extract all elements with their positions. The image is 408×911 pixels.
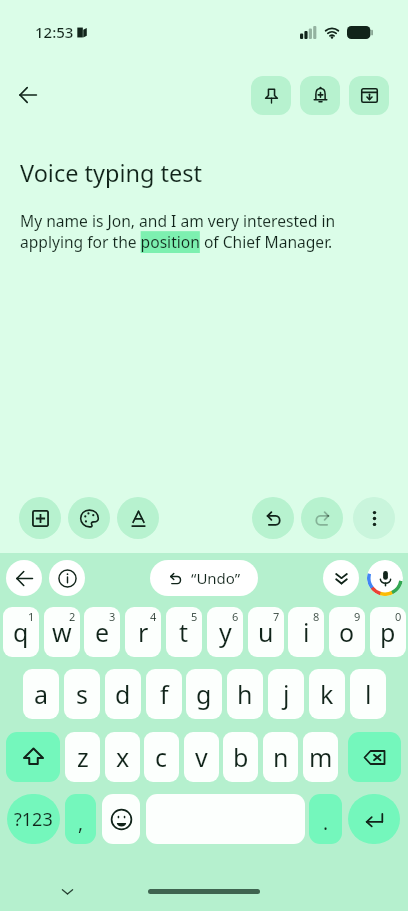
button[interactable]: y	[207, 607, 243, 657]
staticText: My name is Jon, and I am very interested…	[20, 210, 382, 253]
button[interactable]: Information	[49, 560, 85, 596]
staticText: .	[323, 810, 329, 836]
button[interactable]: Back	[6, 73, 50, 117]
staticText: 1	[28, 609, 35, 624]
staticText: f	[160, 677, 169, 711]
button[interactable]: l	[350, 669, 386, 719]
button[interactable]: Add item	[19, 497, 61, 539]
staticText: u	[258, 615, 274, 649]
button[interactable]: Background colour	[68, 497, 110, 539]
staticText: g	[196, 677, 212, 711]
button[interactable]: j	[268, 669, 304, 719]
button[interactable]: a	[23, 669, 59, 719]
staticText: a	[34, 677, 49, 711]
button[interactable]: Emoji	[102, 794, 140, 844]
button[interactable]: q	[3, 607, 39, 657]
button[interactable]: ?123	[7, 794, 60, 844]
staticText: 9	[354, 609, 361, 624]
button[interactable]: c	[144, 732, 179, 782]
staticText: q	[13, 615, 29, 649]
staticText: 0	[395, 609, 402, 624]
button[interactable]: k	[309, 669, 345, 719]
staticText: 8	[313, 609, 320, 624]
staticText: Voice typing test	[20, 157, 203, 189]
button[interactable]: p	[370, 607, 406, 657]
button[interactable]: m	[303, 732, 338, 782]
button[interactable]: h	[227, 669, 263, 719]
staticText: v	[195, 740, 208, 774]
button[interactable]: Back	[6, 560, 42, 596]
staticText: 5	[191, 609, 198, 624]
button[interactable]: Backspace	[348, 732, 401, 782]
staticText: h	[237, 677, 253, 711]
button[interactable]: .	[309, 794, 342, 844]
button[interactable]: Hide keyboard	[60, 884, 75, 899]
button[interactable]: o	[329, 607, 365, 657]
button[interactable]: Collapse keyboard	[323, 560, 359, 596]
staticText: d	[115, 677, 131, 711]
staticText: 6	[232, 609, 239, 624]
button[interactable]: Undo	[252, 497, 294, 539]
button[interactable]: n	[263, 732, 298, 782]
button[interactable]: b	[223, 732, 258, 782]
button[interactable]: Archive	[349, 76, 389, 115]
button[interactable]: f	[146, 669, 182, 719]
button[interactable]: d	[105, 669, 141, 719]
staticText: 3	[109, 609, 116, 624]
staticText: w	[52, 615, 72, 649]
button[interactable]: s	[64, 669, 100, 719]
staticText: c	[155, 740, 168, 774]
button[interactable]: u	[248, 607, 284, 657]
button[interactable]: v	[184, 732, 219, 782]
staticText: r	[138, 615, 149, 649]
staticText: b	[233, 740, 249, 774]
button[interactable]: Enter	[348, 794, 400, 844]
staticText: ?123	[14, 807, 53, 832]
button[interactable]: x	[105, 732, 140, 782]
staticText: 12:53	[35, 22, 74, 42]
staticText: j	[283, 677, 290, 711]
staticText: z	[77, 740, 89, 774]
button[interactable]: Add reminder	[300, 76, 340, 115]
staticText: e	[95, 615, 110, 649]
staticText: 4	[150, 609, 157, 624]
staticText: k	[320, 677, 334, 711]
staticText: i	[303, 615, 310, 649]
button[interactable]: w	[44, 607, 80, 657]
staticText: t	[179, 615, 189, 649]
button[interactable]: g	[186, 669, 222, 719]
button[interactable]: r	[125, 607, 161, 657]
staticText: o	[339, 615, 355, 649]
button[interactable]: i	[288, 607, 324, 657]
staticText: l	[365, 677, 372, 711]
button[interactable]: e	[84, 607, 120, 657]
button[interactable]	[146, 794, 305, 844]
staticText: x	[116, 740, 130, 774]
button[interactable]: z	[65, 732, 100, 782]
staticText: p	[380, 615, 396, 649]
staticText: 7	[273, 609, 280, 624]
button[interactable]: Redo	[301, 497, 343, 539]
staticText: s	[76, 677, 88, 711]
button[interactable]: Voice input	[367, 560, 403, 596]
staticText: “Undo”	[191, 568, 241, 588]
button[interactable]: Pin	[251, 76, 291, 115]
button[interactable]: t	[166, 607, 202, 657]
button[interactable]: Text formatting	[117, 497, 159, 539]
button[interactable]: “Undo”	[150, 560, 258, 596]
staticText: 2	[69, 609, 76, 624]
button[interactable]: Shift	[6, 732, 60, 782]
button[interactable]: ,	[65, 794, 96, 844]
staticText: n	[273, 740, 289, 774]
staticText: y	[219, 615, 232, 649]
staticText: m	[309, 740, 333, 774]
button[interactable]: More options	[353, 497, 395, 539]
staticText: ,	[78, 810, 84, 836]
